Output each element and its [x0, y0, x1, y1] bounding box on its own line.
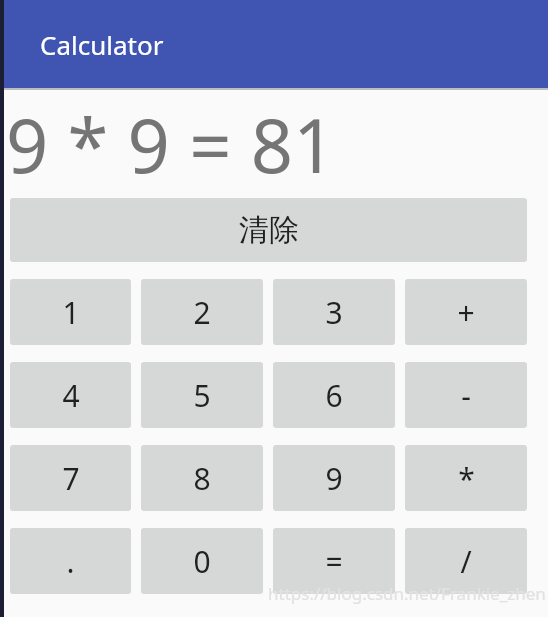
button[interactable]: 7 [10, 445, 131, 511]
button[interactable]: 3 [273, 279, 395, 345]
button[interactable]: 清除 [10, 198, 527, 262]
staticText: Calculator [40, 27, 164, 62]
staticText: 1 [62, 292, 80, 333]
staticText: 清除 [239, 211, 299, 249]
staticText: = [325, 541, 343, 582]
staticText: 0 [193, 541, 211, 582]
button[interactable]: 4 [10, 362, 131, 428]
button[interactable]: + [405, 279, 527, 345]
button[interactable]: 8 [141, 445, 263, 511]
button[interactable]: 0 [141, 528, 263, 594]
staticText: https://blog.csdn.net/Frankie_zhen [268, 582, 546, 605]
staticText: 9 [325, 458, 343, 499]
button[interactable]: 6 [273, 362, 395, 428]
button[interactable]: 5 [141, 362, 263, 428]
staticText: 4 [62, 375, 80, 416]
button[interactable]: . [10, 528, 131, 594]
staticText: 2 [193, 292, 211, 333]
button[interactable]: * [405, 445, 527, 511]
staticText: 8 [193, 458, 211, 499]
button[interactable]: / [405, 528, 527, 594]
button[interactable]: 2 [141, 279, 263, 345]
staticText: 9 * 9 = 81 [6, 94, 336, 195]
staticText: 3 [325, 292, 343, 333]
button[interactable]: 1 [10, 279, 131, 345]
staticText: * [458, 458, 475, 499]
staticText: 6 [325, 375, 343, 416]
button[interactable]: 9 [273, 445, 395, 511]
staticText: + [457, 292, 475, 333]
staticText: - [461, 375, 471, 416]
staticText: . [66, 541, 75, 582]
staticText: 7 [62, 458, 80, 499]
button[interactable]: = [273, 528, 395, 594]
staticText: / [460, 541, 472, 582]
staticText: 5 [193, 375, 211, 416]
button[interactable]: - [405, 362, 527, 428]
